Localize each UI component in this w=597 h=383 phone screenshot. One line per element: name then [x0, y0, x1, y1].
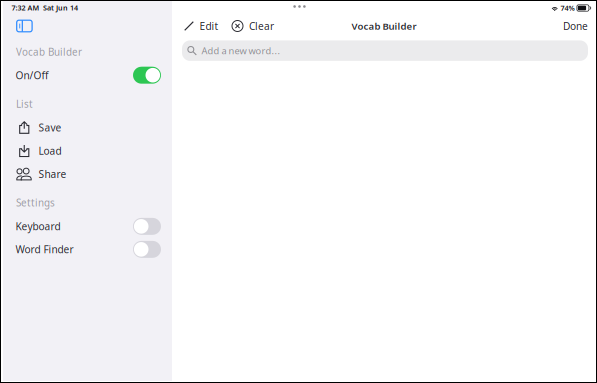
staticText: On/Off — [15, 68, 48, 82]
button[interactable]: Save — [3, 116, 172, 139]
staticText: List — [16, 97, 33, 110]
button[interactable]: Share — [3, 162, 172, 186]
staticText: 74% — [560, 3, 574, 13]
staticText: Clear — [249, 19, 274, 33]
button[interactable]: Hide Sidebar — [3, 16, 172, 36]
staticText: Load — [38, 144, 61, 158]
button[interactable]: Load — [3, 139, 172, 162]
staticText: Save — [38, 121, 61, 134]
button[interactable]: Word Finder — [3, 238, 172, 261]
button[interactable]: Done — [563, 15, 588, 37]
button[interactable]: Keyboard — [3, 215, 172, 238]
button[interactable]: Multitasking Controls — [285, 2, 314, 11]
staticText: Share — [38, 167, 66, 181]
staticText: Vocab Builder — [351, 19, 416, 33]
staticText: 7:32 AM — [11, 3, 39, 13]
staticText: Done — [563, 19, 588, 33]
staticText: Add a new word... — [201, 44, 280, 57]
staticText: Keyboard — [15, 219, 60, 233]
staticText: Sat Jun 14 — [43, 3, 78, 13]
button[interactable]: On/Off — [3, 64, 172, 87]
staticText: Word Finder — [15, 242, 73, 256]
button[interactable]: Clear — [232, 15, 274, 37]
staticText: Vocab Builder — [16, 45, 82, 59]
staticText: Edit — [199, 19, 218, 33]
button[interactable]: Edit — [181, 15, 218, 37]
staticText: Settings — [16, 196, 55, 209]
